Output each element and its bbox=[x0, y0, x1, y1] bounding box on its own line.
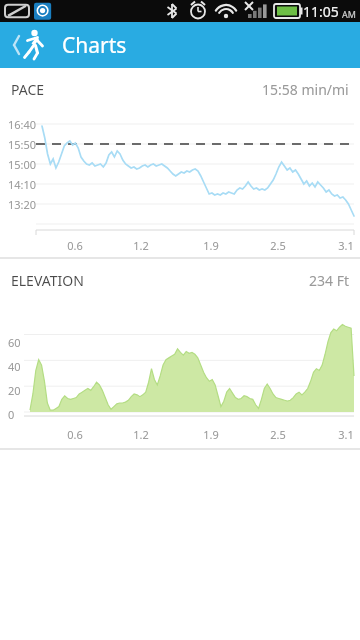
staticText: 15:00 bbox=[8, 157, 37, 172]
staticText: 0.6 bbox=[63, 427, 87, 442]
staticText: ELEVATION bbox=[11, 271, 84, 290]
staticText: 2.5 bbox=[266, 427, 290, 442]
staticText: Charts bbox=[62, 31, 127, 60]
staticText: 0.6 bbox=[63, 238, 87, 253]
staticText: 3.1 bbox=[334, 238, 358, 253]
button[interactable]: Back bbox=[6, 22, 54, 68]
staticText: 1.2 bbox=[129, 427, 153, 442]
button[interactable]: ELEVATION bbox=[0, 263, 360, 448]
staticText: 16:40 bbox=[8, 117, 37, 132]
staticText: 0 bbox=[8, 407, 15, 422]
staticText: 60 bbox=[8, 335, 21, 350]
button[interactable]: PACE bbox=[0, 72, 360, 257]
staticText: 20 bbox=[8, 383, 21, 398]
staticText: 234 Ft bbox=[309, 271, 349, 290]
staticText: 1.9 bbox=[199, 238, 223, 253]
staticText: 1.2 bbox=[129, 238, 153, 253]
staticText: 3.1 bbox=[334, 427, 358, 442]
staticText: AM bbox=[342, 8, 356, 20]
staticText: 1.9 bbox=[199, 427, 223, 442]
staticText: 14:10 bbox=[8, 177, 37, 192]
staticText: 15:50 bbox=[8, 137, 37, 152]
staticText: 2.5 bbox=[266, 238, 290, 253]
staticText: 40 bbox=[8, 359, 21, 374]
staticText: 13:20 bbox=[8, 197, 37, 212]
staticText: 11:05 bbox=[303, 2, 339, 21]
staticText: 15:58 min/mi bbox=[262, 80, 349, 99]
staticText: PACE bbox=[11, 80, 45, 99]
